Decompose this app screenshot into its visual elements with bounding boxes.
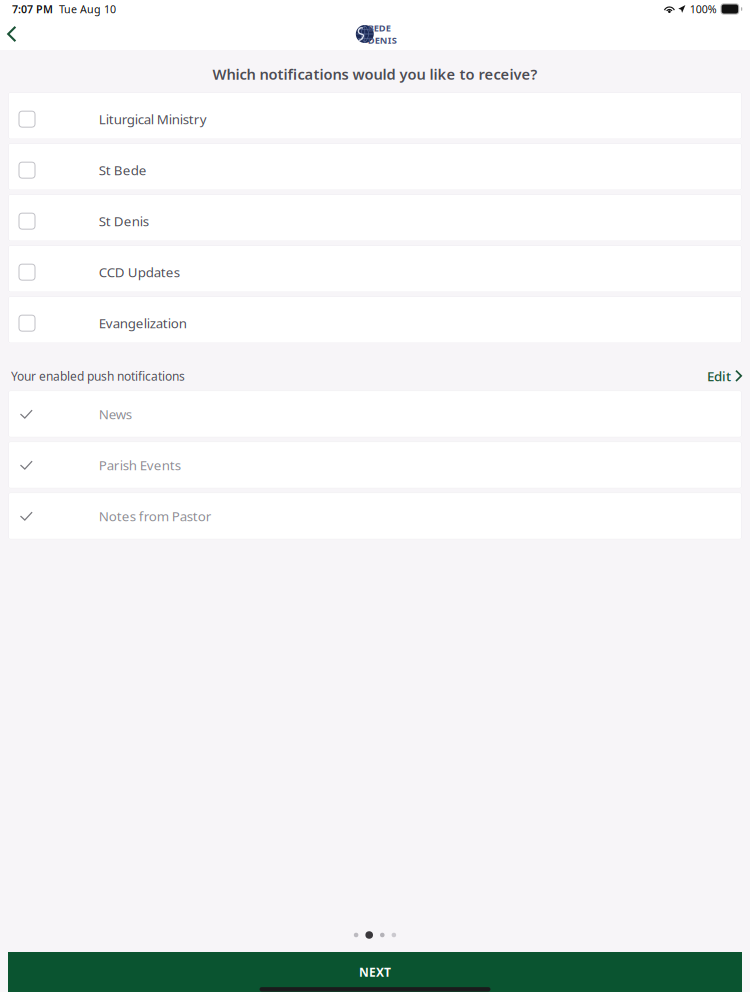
staticText: Which notifications would you like to re… (212, 64, 537, 84)
button[interactable]: Liturgical Ministry (8, 92, 742, 139)
staticText: DENIS (368, 34, 397, 46)
staticText: CCD Updates (99, 263, 180, 281)
button[interactable]: Evangelization (8, 296, 742, 343)
button[interactable]: Parish Events (8, 441, 742, 489)
staticText: Evangelization (99, 314, 187, 332)
button[interactable]: Notes from Pastor (8, 492, 742, 540)
staticText: 100% (690, 2, 717, 16)
staticText: Tue Aug 10 (59, 2, 116, 16)
staticText: Liturgical Ministry (99, 110, 207, 128)
staticText: NEXT (359, 964, 391, 980)
button[interactable]: Edit enabled push notifications (707, 361, 743, 391)
staticText: 7:07 PM (12, 2, 53, 16)
staticText: BEDE (368, 22, 391, 34)
button[interactable]: News (8, 390, 742, 438)
staticText: Parish Events (99, 456, 181, 474)
button[interactable]: NEXT (8, 952, 742, 992)
button[interactable]: Back (0, 21, 30, 47)
staticText: St Bede (99, 161, 147, 179)
staticText: St Denis (99, 212, 149, 230)
staticText: News (99, 405, 132, 423)
staticText: Your enabled push notifications (11, 368, 185, 384)
staticText: Edit (707, 367, 731, 385)
button[interactable]: St Bede (8, 143, 742, 190)
button[interactable]: CCD Updates (8, 245, 742, 292)
staticText: Notes from Pastor (99, 507, 212, 525)
button[interactable]: St Denis (8, 194, 742, 241)
